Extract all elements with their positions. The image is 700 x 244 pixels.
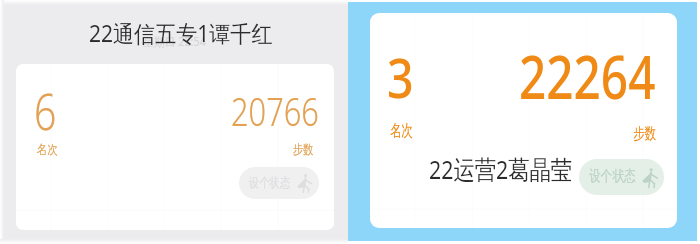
staticText: 6	[34, 78, 56, 145]
staticText: 名次	[390, 121, 413, 141]
button[interactable]: 3	[370, 13, 677, 228]
staticText: 设个状态	[589, 167, 636, 186]
button[interactable]: 6	[16, 64, 334, 230]
staticText: 20766	[231, 84, 319, 137]
staticText: 名次	[37, 141, 57, 157]
button[interactable]: 设个状态	[239, 167, 319, 199]
staticText: 步数	[633, 124, 656, 144]
staticText: 3	[387, 39, 414, 114]
staticText: 22通信五专1谭千红	[89, 17, 273, 48]
staticText: 步数	[293, 141, 313, 157]
button[interactable]: 设个状态	[579, 159, 664, 195]
staticText: 22运营2葛晶莹	[429, 151, 572, 187]
staticText: 设个状态	[249, 174, 290, 190]
staticText: 22264	[519, 35, 656, 117]
staticText: 星期日 22:54	[143, 33, 206, 49]
